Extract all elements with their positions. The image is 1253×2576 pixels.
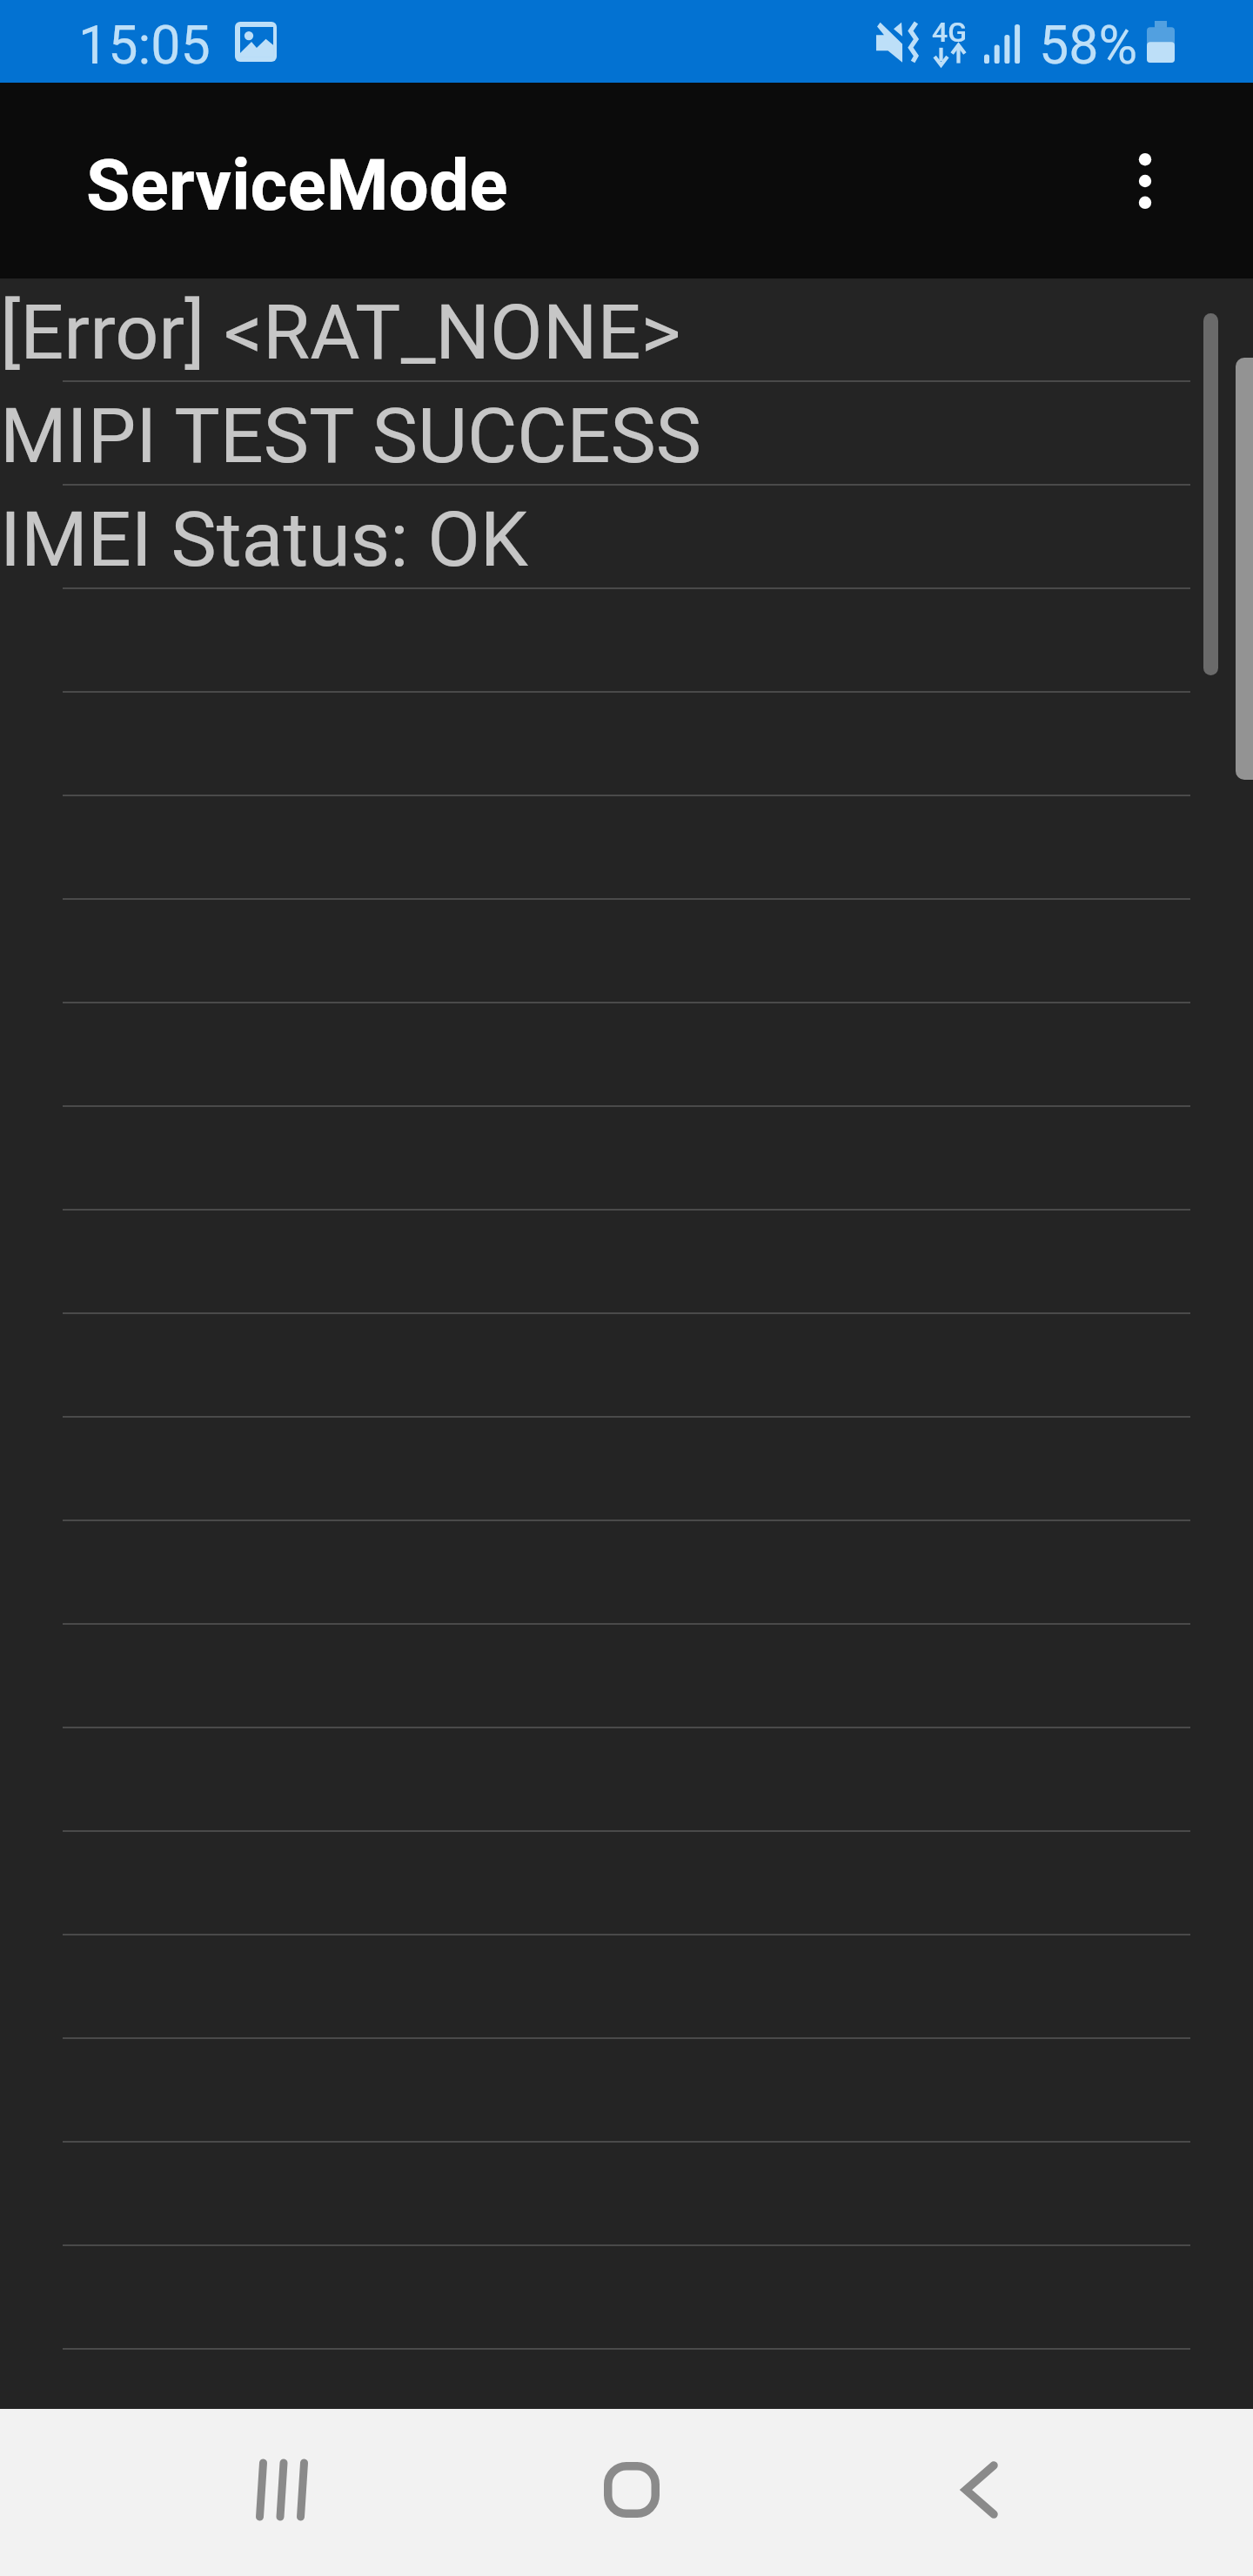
button[interactable] [0,796,1253,900]
button[interactable]: MIPI TEST SUCCESS [0,382,1253,486]
button[interactable] [0,1625,1253,1728]
other: Vibrate [909,21,917,64]
button[interactable]: IMEI Status: OK [0,486,1253,589]
button[interactable] [0,900,1253,1003]
button[interactable] [0,1107,1253,1211]
button[interactable] [0,2039,1253,2143]
staticText: 58% [1039,14,1138,76]
staticText: MIPI TEST SUCCESS [0,391,702,480]
button[interactable]: More options [1096,132,1194,230]
staticText: 15:05 [78,14,211,76]
button[interactable]: Back [910,2420,1049,2559]
button[interactable] [0,1728,1253,1832]
button[interactable] [0,1521,1253,1625]
other: Signal strength [984,23,1022,64]
button[interactable] [0,1314,1253,1418]
button[interactable] [0,1211,1253,1314]
button[interactable] [0,1832,1253,1935]
staticText: 4G [932,16,967,49]
button[interactable] [0,693,1253,796]
other: Mobile data active [934,44,966,65]
button[interactable] [0,1003,1253,1107]
staticText: [Error] <RAT_NONE> [0,287,681,377]
button[interactable] [0,1418,1253,1521]
other: Battery 58 percent [1147,21,1175,63]
button[interactable] [0,589,1253,693]
button[interactable]: [Error] <RAT_NONE> [0,278,1253,382]
button[interactable] [0,2246,1253,2350]
other: Sound off [875,21,903,64]
other: Screenshot captured [235,22,277,62]
staticText: IMEI Status: OK [0,494,529,584]
staticText: ServiceMode [86,144,508,227]
button[interactable]: Recent apps [212,2420,352,2559]
button[interactable]: Home [562,2420,701,2559]
button[interactable] [0,2143,1253,2246]
button[interactable] [0,1935,1253,2039]
